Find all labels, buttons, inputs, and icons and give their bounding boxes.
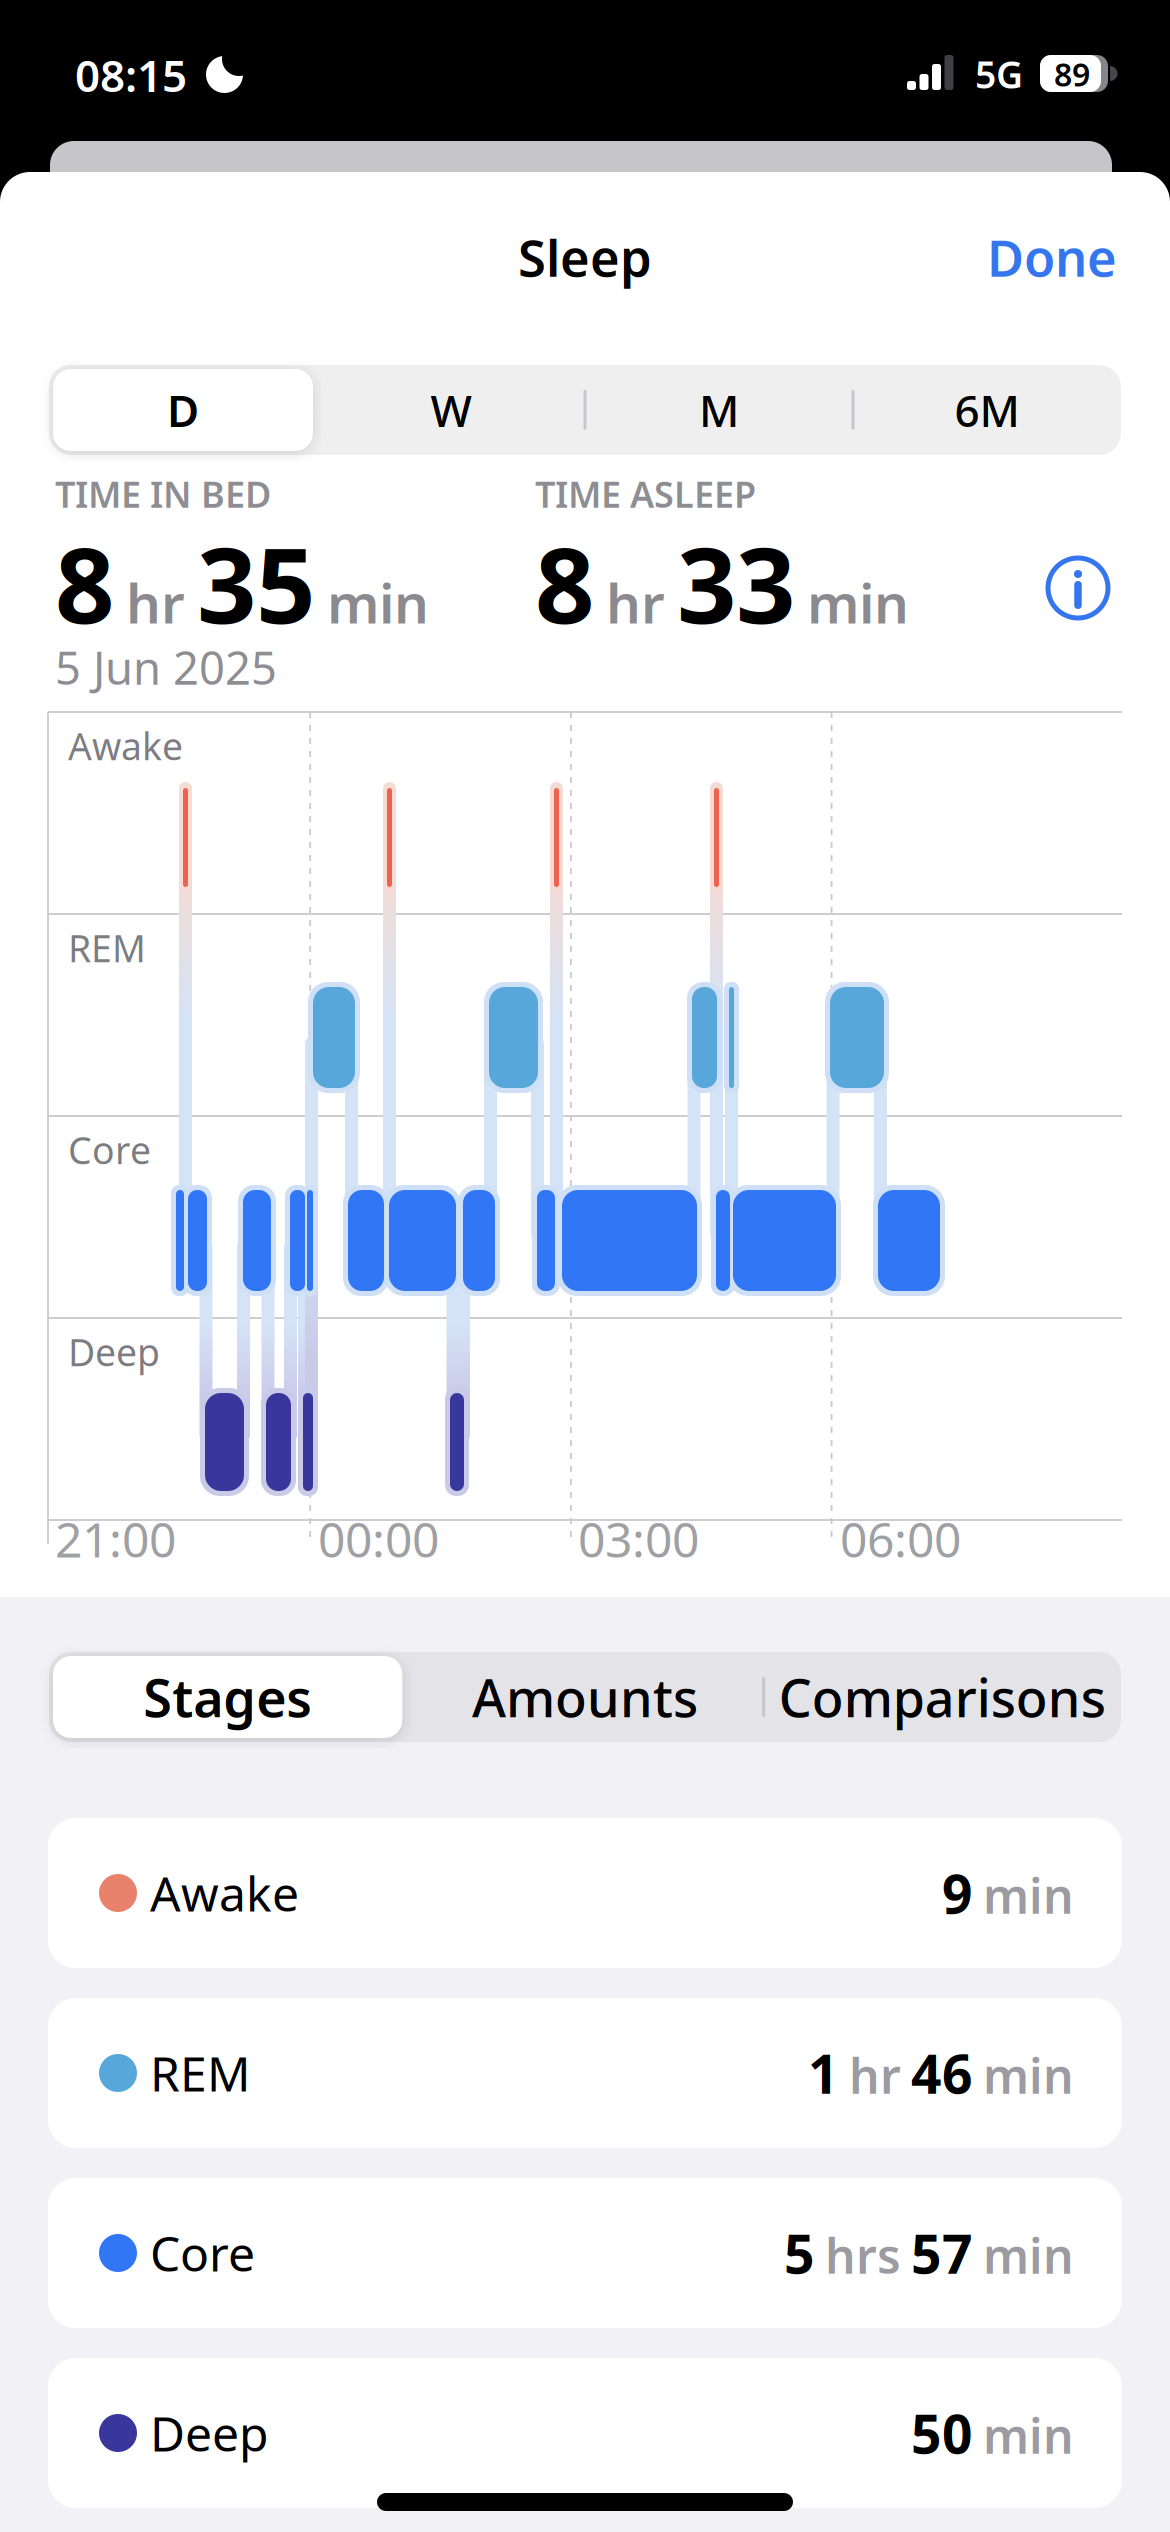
staticText: 03:00	[578, 1507, 699, 1571]
staticText: Core	[150, 2221, 255, 2285]
staticText: 8	[55, 514, 114, 652]
staticText: 50	[911, 2398, 973, 2468]
staticText: Stages	[143, 1662, 312, 1732]
staticText: Awake	[68, 721, 183, 771]
staticText: min	[983, 2223, 1074, 2287]
staticText: 6M	[954, 381, 1019, 439]
staticText: M	[699, 381, 739, 439]
staticText: Awake	[150, 1861, 299, 1925]
staticText: Deep	[150, 2401, 269, 2465]
staticText: Sleep	[518, 223, 652, 291]
staticText: 89	[1054, 53, 1090, 95]
button[interactable]: W	[317, 365, 585, 455]
staticText: 5	[784, 2218, 815, 2288]
staticText: min	[983, 2403, 1074, 2467]
staticText: 9	[942, 1858, 973, 1928]
staticText: min	[327, 566, 429, 638]
staticText: 5 Jun 2025	[55, 637, 277, 697]
button[interactable]: D	[49, 365, 317, 455]
button[interactable]: 6M	[853, 365, 1121, 455]
staticText: 5G	[975, 49, 1023, 99]
staticText: TIME ASLEEP	[535, 470, 756, 518]
staticText: Comparisons	[779, 1662, 1106, 1732]
staticText: REM	[68, 923, 146, 973]
staticText: 33	[677, 514, 795, 652]
staticText: D	[167, 381, 199, 439]
button[interactable]: Amounts	[406, 1652, 764, 1742]
staticText: 06:00	[840, 1507, 961, 1571]
staticText: Core	[68, 1125, 151, 1175]
staticText: hrs	[825, 2223, 901, 2287]
staticText: 00:00	[318, 1507, 439, 1571]
staticText: min	[807, 566, 909, 638]
staticText: Amounts	[472, 1662, 698, 1732]
staticText: TIME IN BED	[55, 470, 271, 518]
staticText: min	[983, 1863, 1074, 1927]
staticText: Done	[987, 223, 1117, 291]
staticText: 57	[911, 2218, 973, 2288]
staticText: W	[430, 381, 471, 439]
staticText: 8	[535, 514, 594, 652]
staticText: 46	[911, 2038, 973, 2108]
staticText: 1	[808, 2038, 839, 2108]
staticText: hr	[126, 566, 185, 638]
button[interactable]: Stages	[49, 1652, 406, 1742]
staticText: REM	[150, 2041, 251, 2105]
button[interactable]: Done	[962, 217, 1142, 297]
staticText: min	[983, 2043, 1074, 2107]
staticText: 21:00	[55, 1507, 176, 1571]
staticText: 35	[197, 514, 315, 652]
staticText: 08:15	[75, 46, 187, 104]
staticText: hr	[606, 566, 665, 638]
staticText: Deep	[68, 1327, 160, 1377]
button[interactable]: About Sleep	[1040, 550, 1116, 626]
button[interactable]: M	[585, 365, 853, 455]
button[interactable]: Comparisons	[764, 1652, 1121, 1742]
staticText: hr	[849, 2043, 901, 2107]
